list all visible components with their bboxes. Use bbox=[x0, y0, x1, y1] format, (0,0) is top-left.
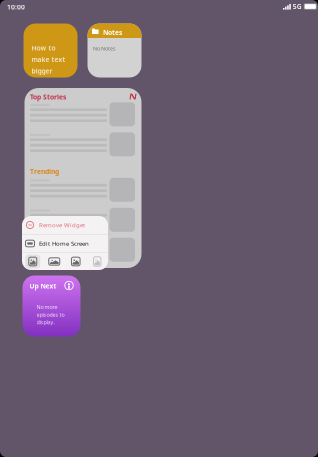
button[interactable]: Remove Widget bbox=[22, 216, 108, 234]
staticText: 5G bbox=[293, 2, 302, 11]
staticText: No Notes bbox=[93, 45, 116, 52]
button[interactable]: How to bbox=[23, 23, 77, 77]
button[interactable]: Medium widget bbox=[43, 253, 65, 270]
staticText: display. bbox=[36, 319, 54, 326]
button[interactable]: Small widget bbox=[22, 253, 43, 270]
button[interactable]: Edit Home Screen bbox=[22, 234, 108, 252]
staticText: bigger bbox=[31, 66, 52, 75]
button[interactable]: Notes bbox=[87, 23, 141, 77]
staticText: 10:00 bbox=[7, 2, 25, 11]
staticText: Remove Widget bbox=[39, 221, 85, 229]
staticText: make text bbox=[31, 55, 65, 64]
button[interactable]: Extra large widget bbox=[86, 253, 108, 270]
staticText: Top Stories bbox=[30, 92, 66, 101]
staticText: Notes bbox=[103, 28, 122, 37]
button[interactable]: Large widget bbox=[65, 253, 86, 270]
staticText: Edit Home Screen bbox=[39, 239, 89, 248]
staticText: Trending bbox=[30, 167, 59, 176]
staticText: Up Next bbox=[29, 281, 56, 290]
staticText: No more bbox=[36, 303, 57, 311]
staticText: episodes to bbox=[36, 311, 64, 318]
button[interactable]: Top Stories bbox=[24, 88, 141, 268]
staticText: How to bbox=[31, 43, 55, 52]
button[interactable]: Up Next bbox=[22, 275, 80, 336]
